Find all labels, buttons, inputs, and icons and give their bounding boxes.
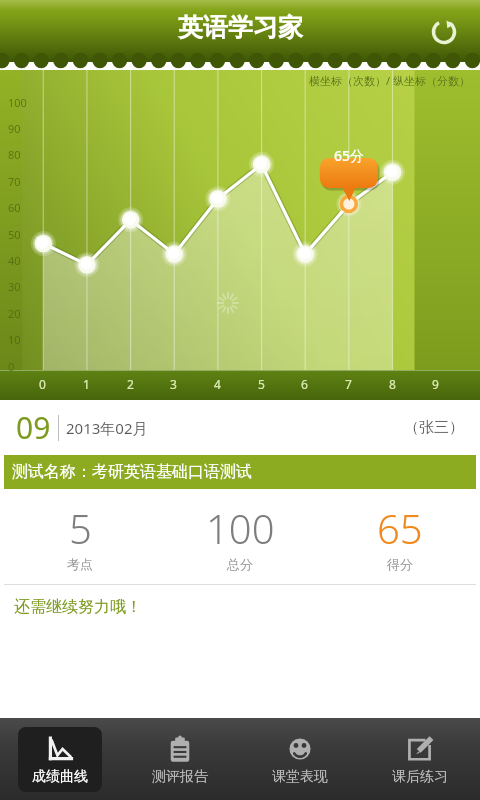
staticText: 课堂表现 [272, 768, 328, 786]
staticText: 英语学习家 [178, 12, 303, 43]
staticText: 100 [206, 501, 275, 555]
staticText: 20 [8, 306, 21, 321]
staticText: 10 [8, 332, 21, 347]
staticText: 1 [83, 376, 90, 392]
staticText: 5 [258, 376, 265, 392]
staticText: 3 [170, 376, 177, 392]
staticText: 30 [8, 279, 21, 294]
staticText: 5 [69, 501, 92, 555]
staticText: 还需继续努力哦！ [14, 597, 142, 617]
staticText: 8 [389, 376, 396, 392]
staticText: 得分 [387, 556, 413, 572]
staticText: 测试名称：考研英语基础口语测试 [12, 462, 252, 482]
button[interactable]: 测评报告 [138, 727, 222, 792]
staticText: 2 [127, 376, 134, 392]
staticText: 6 [301, 376, 308, 392]
staticText: 65分 [334, 146, 365, 165]
button[interactable]: 课堂表现 [258, 727, 342, 792]
button[interactable]: 成绩曲线 [18, 727, 102, 792]
staticText: 0 [8, 359, 15, 374]
staticText: 7 [345, 376, 352, 392]
staticText: 2013年02月 [66, 418, 148, 438]
staticText: 总分 [227, 556, 253, 572]
staticText: 100 [8, 95, 27, 110]
staticText: 横坐标（次数）/ 纵坐标（分数） [309, 73, 470, 88]
button[interactable]: 课后练习 [378, 727, 462, 792]
button[interactable]: 65 [320, 501, 480, 572]
button[interactable]: 100 [160, 501, 320, 572]
staticText: 9 [432, 376, 439, 392]
staticText: 0 [39, 376, 46, 392]
staticText: 09 [16, 407, 51, 448]
staticText: 50 [8, 227, 21, 242]
staticText: 考点 [67, 556, 93, 572]
staticText: 4 [214, 376, 221, 392]
staticText: 70 [8, 174, 21, 189]
button[interactable]: Refresh [422, 10, 466, 54]
staticText: 90 [8, 121, 21, 136]
staticText: 课后练习 [392, 768, 448, 786]
staticText: 测评报告 [152, 768, 208, 786]
button[interactable]: 5 [0, 501, 160, 572]
staticText: 40 [8, 253, 21, 268]
staticText: 65 [377, 501, 423, 555]
button[interactable]: 测试名称：考研英语基础口语测试 [4, 455, 476, 489]
staticText: （张三） [404, 418, 464, 437]
staticText: 80 [8, 147, 21, 162]
staticText: 60 [8, 200, 21, 215]
staticText: 成绩曲线 [32, 768, 88, 786]
